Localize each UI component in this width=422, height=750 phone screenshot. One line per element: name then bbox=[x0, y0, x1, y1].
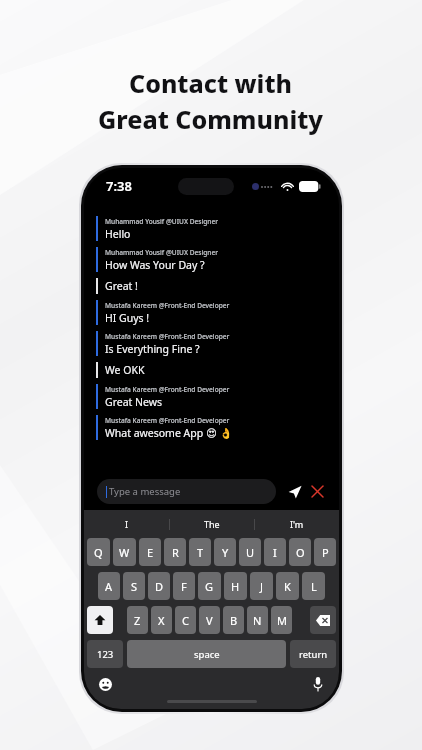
staticText: I bbox=[125, 518, 129, 530]
staticText: I bbox=[273, 545, 277, 560]
button[interactable]: Muhammad Yousif @UIUX Designer bbox=[96, 216, 327, 241]
button[interactable]: Great ! bbox=[96, 278, 327, 294]
staticText: V bbox=[206, 613, 213, 628]
staticText: M bbox=[277, 613, 287, 628]
staticText: Contact with bbox=[129, 66, 293, 100]
button[interactable]: Dictation bbox=[309, 675, 327, 693]
staticText: space bbox=[194, 648, 220, 661]
button[interactable]: O bbox=[289, 538, 311, 566]
staticText: Muhammad Yousif @UIUX Designer bbox=[105, 248, 219, 257]
staticText: Is Everything Fine ? bbox=[105, 342, 200, 356]
button[interactable]: We OKK bbox=[96, 362, 327, 378]
button[interactable]: Mustafa Kareem @Front-End Developer bbox=[96, 415, 327, 440]
staticText: What awesome App 😍 👌 bbox=[105, 426, 233, 440]
button[interactable]: D bbox=[148, 572, 170, 600]
staticText: 7:38 bbox=[106, 177, 132, 195]
staticText: Type a message bbox=[109, 485, 181, 498]
staticText: Z bbox=[134, 613, 141, 628]
button[interactable]: M bbox=[271, 606, 292, 634]
button[interactable]: I'm bbox=[255, 513, 339, 535]
button[interactable]: G bbox=[198, 572, 221, 600]
button[interactable]: Mustafa Kareem @Front-End Developer bbox=[96, 300, 327, 325]
button[interactable]: Q bbox=[87, 538, 110, 566]
staticText: X bbox=[158, 613, 165, 628]
button[interactable]: L bbox=[302, 572, 325, 600]
button[interactable]: I bbox=[264, 538, 286, 566]
button[interactable]: 123 bbox=[87, 640, 123, 668]
button[interactable]: U bbox=[239, 538, 261, 566]
staticText: I'm bbox=[290, 518, 304, 530]
staticText: G bbox=[205, 579, 214, 594]
staticText: L bbox=[311, 579, 317, 594]
staticText: W bbox=[119, 545, 130, 560]
staticText: H bbox=[231, 579, 240, 594]
staticText: Mustafa Kareem @Front-End Developer bbox=[105, 332, 230, 341]
button[interactable]: Type a message bbox=[106, 479, 267, 504]
staticText: Q bbox=[94, 545, 103, 560]
staticText: P bbox=[322, 545, 329, 560]
button[interactable]: Mustafa Kareem @Front-End Developer bbox=[96, 331, 327, 356]
button[interactable]: Send bbox=[285, 482, 304, 501]
button[interactable]: E bbox=[139, 538, 161, 566]
staticText: C bbox=[182, 613, 189, 628]
button[interactable]: Y bbox=[214, 538, 236, 566]
button[interactable]: P bbox=[314, 538, 336, 566]
button[interactable]: V bbox=[199, 606, 220, 634]
staticText: N bbox=[253, 613, 262, 628]
staticText: A bbox=[105, 579, 113, 594]
staticText: Great Community bbox=[98, 102, 324, 136]
staticText: F bbox=[181, 579, 187, 594]
staticText: O bbox=[296, 545, 305, 560]
staticText: Mustafa Kareem @Front-End Developer bbox=[105, 301, 230, 310]
button[interactable]: Shift bbox=[87, 606, 113, 634]
staticText: D bbox=[155, 579, 164, 594]
staticText: E bbox=[147, 545, 154, 560]
staticText: Great News bbox=[105, 395, 163, 409]
button[interactable]: Emoji bbox=[96, 675, 114, 693]
button[interactable]: H bbox=[224, 572, 247, 600]
staticText: Great ! bbox=[105, 279, 138, 293]
staticText: B bbox=[230, 613, 238, 628]
staticText: The bbox=[204, 518, 220, 530]
button[interactable]: B bbox=[223, 606, 244, 634]
button[interactable]: Muhammad Yousif @UIUX Designer bbox=[96, 247, 327, 272]
staticText: Mustafa Kareem @Front-End Developer bbox=[105, 416, 230, 425]
staticText: K bbox=[284, 579, 291, 594]
staticText: return bbox=[299, 648, 328, 661]
button[interactable]: K bbox=[276, 572, 299, 600]
button[interactable]: I bbox=[84, 513, 169, 535]
button[interactable]: N bbox=[247, 606, 268, 634]
staticText: We OKK bbox=[105, 363, 145, 377]
staticText: Y bbox=[222, 545, 229, 560]
button[interactable]: J bbox=[250, 572, 273, 600]
button[interactable]: W bbox=[113, 538, 136, 566]
button[interactable]: Close bbox=[309, 483, 326, 500]
button[interactable]: Mustafa Kareem @Front-End Developer bbox=[96, 384, 327, 409]
button[interactable]: R bbox=[164, 538, 186, 566]
button[interactable]: space bbox=[127, 640, 286, 668]
button[interactable]: F bbox=[173, 572, 195, 600]
staticText: Hello bbox=[105, 227, 131, 241]
staticText: U bbox=[246, 545, 255, 560]
staticText: R bbox=[172, 545, 179, 560]
button[interactable]: C bbox=[175, 606, 196, 634]
button[interactable]: Z bbox=[127, 606, 148, 634]
button[interactable]: Delete bbox=[310, 606, 336, 634]
staticText: Muhammad Yousif @UIUX Designer bbox=[105, 217, 219, 226]
button[interactable]: X bbox=[151, 606, 172, 634]
staticText: How Was Your Day ? bbox=[105, 258, 205, 272]
staticText: T bbox=[197, 545, 204, 560]
button[interactable]: T bbox=[189, 538, 211, 566]
staticText: S bbox=[131, 579, 138, 594]
staticText: Mustafa Kareem @Front-End Developer bbox=[105, 385, 230, 394]
staticText: J bbox=[260, 579, 264, 594]
staticText: 123 bbox=[97, 648, 114, 661]
staticText: HI Guys ! bbox=[105, 311, 150, 325]
button[interactable]: S bbox=[123, 572, 145, 600]
button[interactable]: A bbox=[98, 572, 120, 600]
button[interactable]: return bbox=[290, 640, 336, 668]
button[interactable]: The bbox=[170, 513, 254, 535]
